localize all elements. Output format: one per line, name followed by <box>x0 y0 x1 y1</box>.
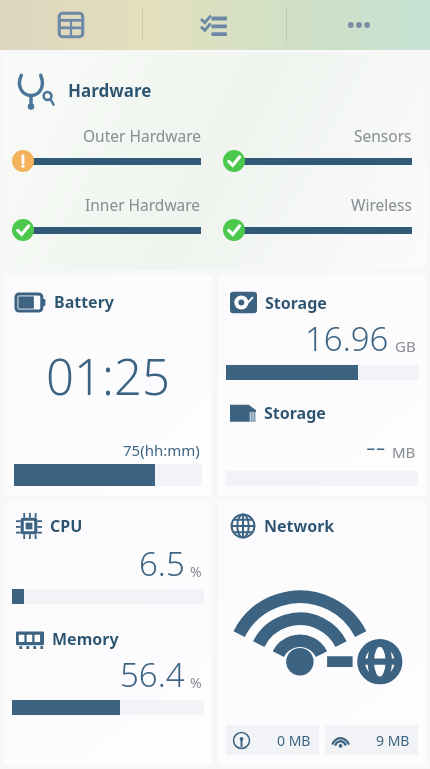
staticText: Inner Hardware <box>85 194 201 215</box>
staticText: Outer Hardware <box>83 125 201 146</box>
button[interactable]: Network <box>218 501 426 765</box>
staticText: Battery <box>54 291 114 313</box>
button[interactable]: 9 MB <box>325 725 418 755</box>
staticText: 16.96 <box>305 316 389 361</box>
staticText: 6.5 <box>139 541 185 586</box>
staticText: 0 MB <box>277 731 311 750</box>
button[interactable]: Wireless <box>215 194 426 241</box>
staticText: % <box>190 562 202 581</box>
button[interactable]: Hardware <box>4 53 426 270</box>
staticText: CPU <box>50 515 83 537</box>
button[interactable]: Inner Hardware <box>4 194 215 241</box>
staticText: 56.4 <box>120 652 185 697</box>
staticText: 01:25 <box>46 343 170 410</box>
button[interactable]: 0 MB <box>226 725 319 755</box>
staticText: Storage <box>264 402 326 424</box>
button[interactable]: Dashboard <box>0 0 142 50</box>
button[interactable]: Battery <box>4 275 212 496</box>
staticText: Network <box>264 515 335 537</box>
staticText: % <box>190 673 202 692</box>
button[interactable]: Tasks <box>143 0 286 50</box>
staticText: Sensors <box>354 125 412 146</box>
staticText: MB <box>392 442 416 462</box>
button[interactable]: Outer Hardware <box>4 125 215 172</box>
staticText: GB <box>395 336 416 356</box>
staticText: 75(hh:mm) <box>123 440 200 460</box>
button[interactable]: Storage <box>218 275 426 496</box>
staticText: Memory <box>52 628 119 650</box>
button[interactable]: CPU <box>4 501 212 765</box>
staticText: Hardware <box>68 79 152 102</box>
staticText: 9 MB <box>376 731 410 750</box>
button[interactable]: Sensors <box>215 125 426 172</box>
staticText: Wireless <box>351 194 412 215</box>
staticText: Storage <box>265 292 327 314</box>
button[interactable]: More options <box>287 0 430 50</box>
staticText: -- <box>366 425 386 466</box>
